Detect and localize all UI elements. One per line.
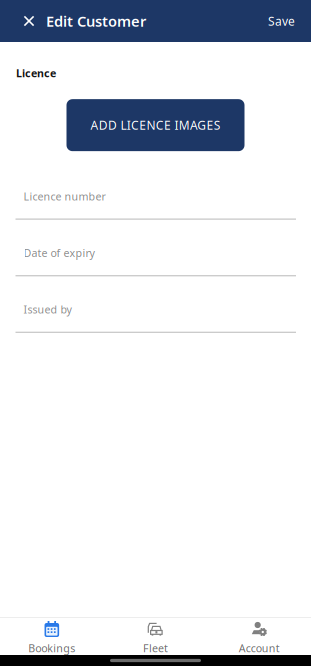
button[interactable]: Bookings: [0, 618, 104, 655]
staticText: Licence: [16, 66, 56, 80]
staticText: Bookings: [28, 641, 75, 655]
staticText: Date of expiry: [23, 246, 94, 260]
staticText: Fleet: [143, 641, 168, 655]
button[interactable]: Close: [0, 0, 46, 42]
button[interactable]: Date of expiry: [15, 220, 296, 276]
staticText: Edit Customer: [46, 11, 146, 31]
staticText: Issued by: [23, 302, 71, 317]
staticText: Licence number: [23, 189, 105, 203]
button[interactable]: Issued by: [15, 276, 296, 333]
button[interactable]: Fleet: [104, 618, 207, 655]
staticText: ADD LICENCE IMAGES: [90, 117, 221, 133]
staticText: Save: [268, 13, 295, 29]
button[interactable]: Save: [268, 0, 311, 42]
button[interactable]: Account: [207, 618, 311, 655]
staticText: Account: [239, 641, 280, 655]
button[interactable]: Licence number: [15, 163, 296, 220]
button[interactable]: ADD LICENCE IMAGES: [66, 99, 244, 151]
